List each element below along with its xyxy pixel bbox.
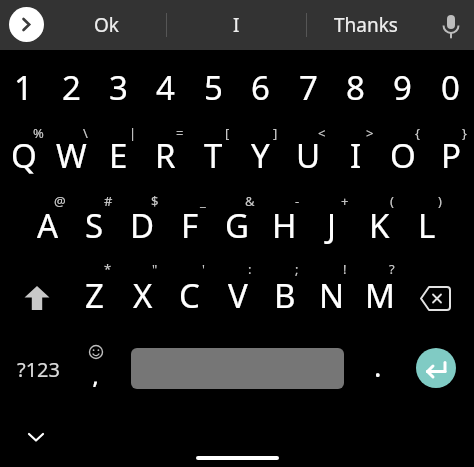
- staticText: _: [200, 192, 206, 210]
- staticText: Y: [251, 133, 270, 178]
- button[interactable]: Y: [237, 124, 284, 186]
- staticText: ?123: [17, 356, 60, 383]
- staticText: Ok: [94, 12, 119, 38]
- staticText: C: [179, 273, 200, 318]
- button[interactable]: Ok: [61, 5, 151, 45]
- staticText: ): [438, 192, 442, 210]
- staticText: @: [54, 192, 66, 210]
- staticText: ;: [295, 260, 299, 278]
- button[interactable]: B: [261, 264, 308, 326]
- button[interactable]: 2: [48, 56, 95, 118]
- staticText: 7: [299, 65, 318, 110]
- staticText: 6: [251, 65, 270, 110]
- button[interactable]: E: [95, 124, 142, 186]
- button[interactable]: V: [214, 264, 261, 326]
- staticText: E: [109, 133, 128, 178]
- button[interactable]: W: [48, 124, 95, 186]
- staticText: ": [152, 260, 158, 278]
- staticText: J: [327, 203, 337, 248]
- staticText: =: [176, 124, 184, 142]
- button[interactable]: 0: [427, 56, 474, 118]
- button[interactable]: T: [190, 124, 237, 186]
- button[interactable]: L: [403, 194, 450, 256]
- button[interactable]: 3: [95, 56, 142, 118]
- staticText: F: [181, 203, 199, 248]
- staticText: 8: [346, 65, 365, 110]
- staticText: !: [343, 260, 347, 278]
- staticText: {: [415, 124, 420, 142]
- button[interactable]: Q: [0, 124, 47, 186]
- staticText: :: [248, 260, 252, 278]
- button[interactable]: ?123: [5, 340, 71, 398]
- button[interactable]: [8, 266, 66, 324]
- staticText: Z: [85, 273, 104, 318]
- button[interactable]: 7: [285, 56, 332, 118]
- button[interactable]: N: [308, 264, 355, 326]
- staticText: A: [37, 203, 59, 248]
- button[interactable]: 5: [190, 56, 237, 118]
- button[interactable]: O: [379, 124, 426, 186]
- button[interactable]: U: [285, 124, 332, 186]
- button[interactable]: .: [358, 346, 398, 386]
- staticText: *: [104, 260, 112, 278]
- staticText: Thanks: [334, 12, 398, 38]
- staticText: Q: [11, 133, 37, 178]
- staticText: O: [390, 133, 416, 178]
- staticText: G: [225, 203, 250, 248]
- button[interactable]: 8: [332, 56, 379, 118]
- staticText: W: [56, 133, 87, 178]
- staticText: .: [374, 347, 382, 385]
- button[interactable]: M: [356, 264, 403, 326]
- button[interactable]: G: [214, 194, 261, 256]
- staticText: (: [390, 192, 394, 210]
- button[interactable]: [407, 266, 465, 324]
- staticText: I: [233, 12, 240, 38]
- staticText: -: [295, 192, 300, 210]
- button[interactable]: 6: [237, 56, 284, 118]
- button[interactable]: P: [427, 124, 474, 186]
- staticText: M: [365, 273, 395, 318]
- button[interactable]: I: [191, 5, 281, 45]
- button[interactable]: [70, 338, 122, 396]
- button[interactable]: Thanks: [316, 5, 416, 45]
- staticText: >: [366, 124, 374, 142]
- button[interactable]: S: [71, 194, 118, 256]
- button[interactable]: K: [356, 194, 403, 256]
- button[interactable]: [9, 7, 44, 42]
- button[interactable]: [22, 424, 50, 450]
- staticText: #: [104, 192, 113, 210]
- button[interactable]: F: [166, 194, 213, 256]
- button[interactable]: D: [119, 194, 166, 256]
- staticText: &: [245, 192, 255, 210]
- staticText: \: [83, 124, 88, 142]
- staticText: H: [272, 203, 297, 248]
- staticText: +: [341, 192, 349, 210]
- staticText: S: [85, 203, 104, 248]
- button[interactable]: [436, 5, 468, 47]
- button[interactable]: 1: [0, 56, 47, 118]
- button[interactable]: A: [24, 194, 71, 256]
- staticText: I: [350, 133, 362, 178]
- button[interactable]: I: [332, 124, 379, 186]
- button[interactable]: 9: [379, 56, 426, 118]
- button[interactable]: C: [166, 264, 213, 326]
- staticText: U: [296, 133, 321, 178]
- button[interactable]: Z: [71, 264, 118, 326]
- button[interactable]: 4: [142, 56, 189, 118]
- staticText: 2: [62, 65, 81, 110]
- button[interactable]: X: [119, 264, 166, 326]
- button[interactable]: R: [142, 124, 189, 186]
- staticText: T: [204, 133, 223, 178]
- staticText: V: [228, 273, 248, 318]
- staticText: K: [369, 203, 390, 248]
- staticText: ,: [92, 357, 99, 387]
- staticText: $: [151, 192, 159, 210]
- staticText: R: [155, 133, 176, 178]
- button[interactable]: [416, 348, 456, 388]
- button[interactable]: [131, 348, 344, 389]
- button[interactable]: H: [261, 194, 308, 256]
- button[interactable]: J: [308, 194, 355, 256]
- staticText: ': [202, 260, 205, 278]
- staticText: %: [33, 124, 44, 142]
- staticText: 3: [109, 65, 128, 110]
